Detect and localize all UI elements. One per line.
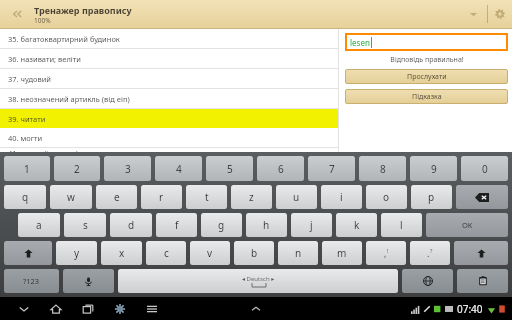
button[interactable]: h <box>246 213 287 237</box>
button[interactable]: 7 <box>308 156 355 181</box>
button[interactable]: 41. поруч (із кимсь) <box>0 148 338 152</box>
button[interactable]: Settings <box>488 0 512 28</box>
button[interactable]: 4 <box>155 156 202 181</box>
button[interactable]: 2 <box>54 156 100 181</box>
button[interactable]: Hide keyboard <box>8 297 40 320</box>
button[interactable]: 1 <box>4 156 50 181</box>
button[interactable]: g <box>201 213 242 237</box>
button[interactable]: Voice input <box>63 269 114 293</box>
button[interactable]: More options <box>459 0 487 28</box>
staticText: n <box>295 246 302 260</box>
button[interactable]: . <box>410 241 450 265</box>
staticText: a <box>36 218 42 232</box>
staticText: b <box>251 246 258 260</box>
button[interactable]: u <box>276 185 317 209</box>
staticText: z <box>249 190 254 204</box>
button[interactable]: Switch language <box>402 269 453 293</box>
staticText: k <box>354 218 360 232</box>
staticText: l <box>400 218 403 232</box>
staticText: 2 <box>74 162 80 176</box>
staticText: d <box>128 218 135 232</box>
staticText: OK <box>462 220 473 230</box>
button[interactable]: t <box>186 185 227 209</box>
button[interactable]: Clipboard <box>457 269 508 293</box>
staticText: s <box>83 218 88 232</box>
button[interactable]: Shift <box>454 241 508 265</box>
button[interactable]: j <box>291 213 332 237</box>
button[interactable]: d <box>110 213 152 237</box>
button[interactable]: e <box>96 185 137 209</box>
button[interactable]: Menu <box>136 297 168 320</box>
button[interactable]: v <box>190 241 230 265</box>
button[interactable]: Screenshot <box>104 297 136 320</box>
staticText: 100% <box>34 16 51 25</box>
button[interactable]: k <box>336 213 377 237</box>
button[interactable]: 40. могти <box>0 128 338 147</box>
button[interactable]: Home <box>40 297 72 320</box>
button[interactable]: 3 <box>104 156 151 181</box>
staticText: x <box>119 246 125 260</box>
button[interactable]: y <box>56 241 97 265</box>
button[interactable]: ?123 <box>4 269 59 293</box>
staticText: 35. багатоквартирний будинок <box>8 34 120 44</box>
button[interactable]: 35. багатоквартирний будинок <box>0 29 338 48</box>
staticText: t <box>205 190 209 204</box>
button[interactable]: 36. називати; веліти <box>0 49 338 68</box>
staticText: ? <box>430 247 433 254</box>
button[interactable]: i <box>321 185 362 209</box>
button[interactable]: , <box>366 241 406 265</box>
staticText: 4 <box>176 162 182 176</box>
button[interactable]: Expand <box>247 300 265 318</box>
button[interactable]: p <box>411 185 452 209</box>
button[interactable]: 37. чудовий <box>0 69 338 88</box>
staticText: 1 <box>24 162 30 176</box>
staticText: . <box>427 247 430 259</box>
button[interactable]: s <box>64 213 106 237</box>
staticText: o <box>383 190 390 204</box>
staticText: u <box>293 190 300 204</box>
button[interactable]: b <box>234 241 274 265</box>
button[interactable]: l <box>381 213 422 237</box>
button[interactable]: n <box>278 241 318 265</box>
button[interactable]: r <box>141 185 182 209</box>
staticText: 0 <box>482 162 488 176</box>
button[interactable]: a <box>18 213 60 237</box>
button[interactable]: Back <box>0 0 34 28</box>
button[interactable]: Прослухати <box>345 69 508 84</box>
staticText: 40. могти <box>8 133 43 143</box>
button[interactable]: OK <box>426 213 508 237</box>
button[interactable]: q <box>4 185 46 209</box>
button[interactable]: Backspace <box>456 185 508 209</box>
button[interactable]: lesen <box>345 33 508 51</box>
button[interactable]: m <box>322 241 362 265</box>
button[interactable]: 6 <box>257 156 304 181</box>
button[interactable]: w <box>50 185 92 209</box>
button[interactable]: x <box>101 241 142 265</box>
staticText: h <box>263 218 270 232</box>
staticText: ◂ Deutsch ▸ <box>242 275 275 283</box>
button[interactable]: 9 <box>410 156 457 181</box>
staticText: y <box>74 246 80 260</box>
button[interactable]: 0 <box>461 156 508 181</box>
button[interactable]: z <box>231 185 272 209</box>
button[interactable]: 39. читати <box>0 109 338 128</box>
staticText: 36. називати; веліти <box>8 54 81 64</box>
button[interactable]: Shift <box>4 241 52 265</box>
staticText: v <box>207 246 213 260</box>
button[interactable]: Recents <box>72 297 104 320</box>
button[interactable]: Space <box>118 269 398 293</box>
staticText: 38. неозначений артикль (від ein) <box>8 94 130 104</box>
staticText: Прослухати <box>407 72 447 82</box>
button[interactable]: o <box>366 185 407 209</box>
button[interactable]: c <box>146 241 186 265</box>
staticText: Відповідь правильна! <box>390 55 464 65</box>
staticText: Підказка <box>412 92 442 102</box>
button[interactable]: 8 <box>359 156 406 181</box>
staticText: Тренажер правопису <box>34 4 132 16</box>
button[interactable]: Підказка <box>345 89 508 104</box>
staticText: 41. поруч (із кимсь) <box>8 148 79 152</box>
button[interactable]: f <box>156 213 197 237</box>
button[interactable]: 38. неозначений артикль (від ein) <box>0 89 338 108</box>
button[interactable]: 5 <box>206 156 253 181</box>
staticText: lesen <box>350 37 370 48</box>
